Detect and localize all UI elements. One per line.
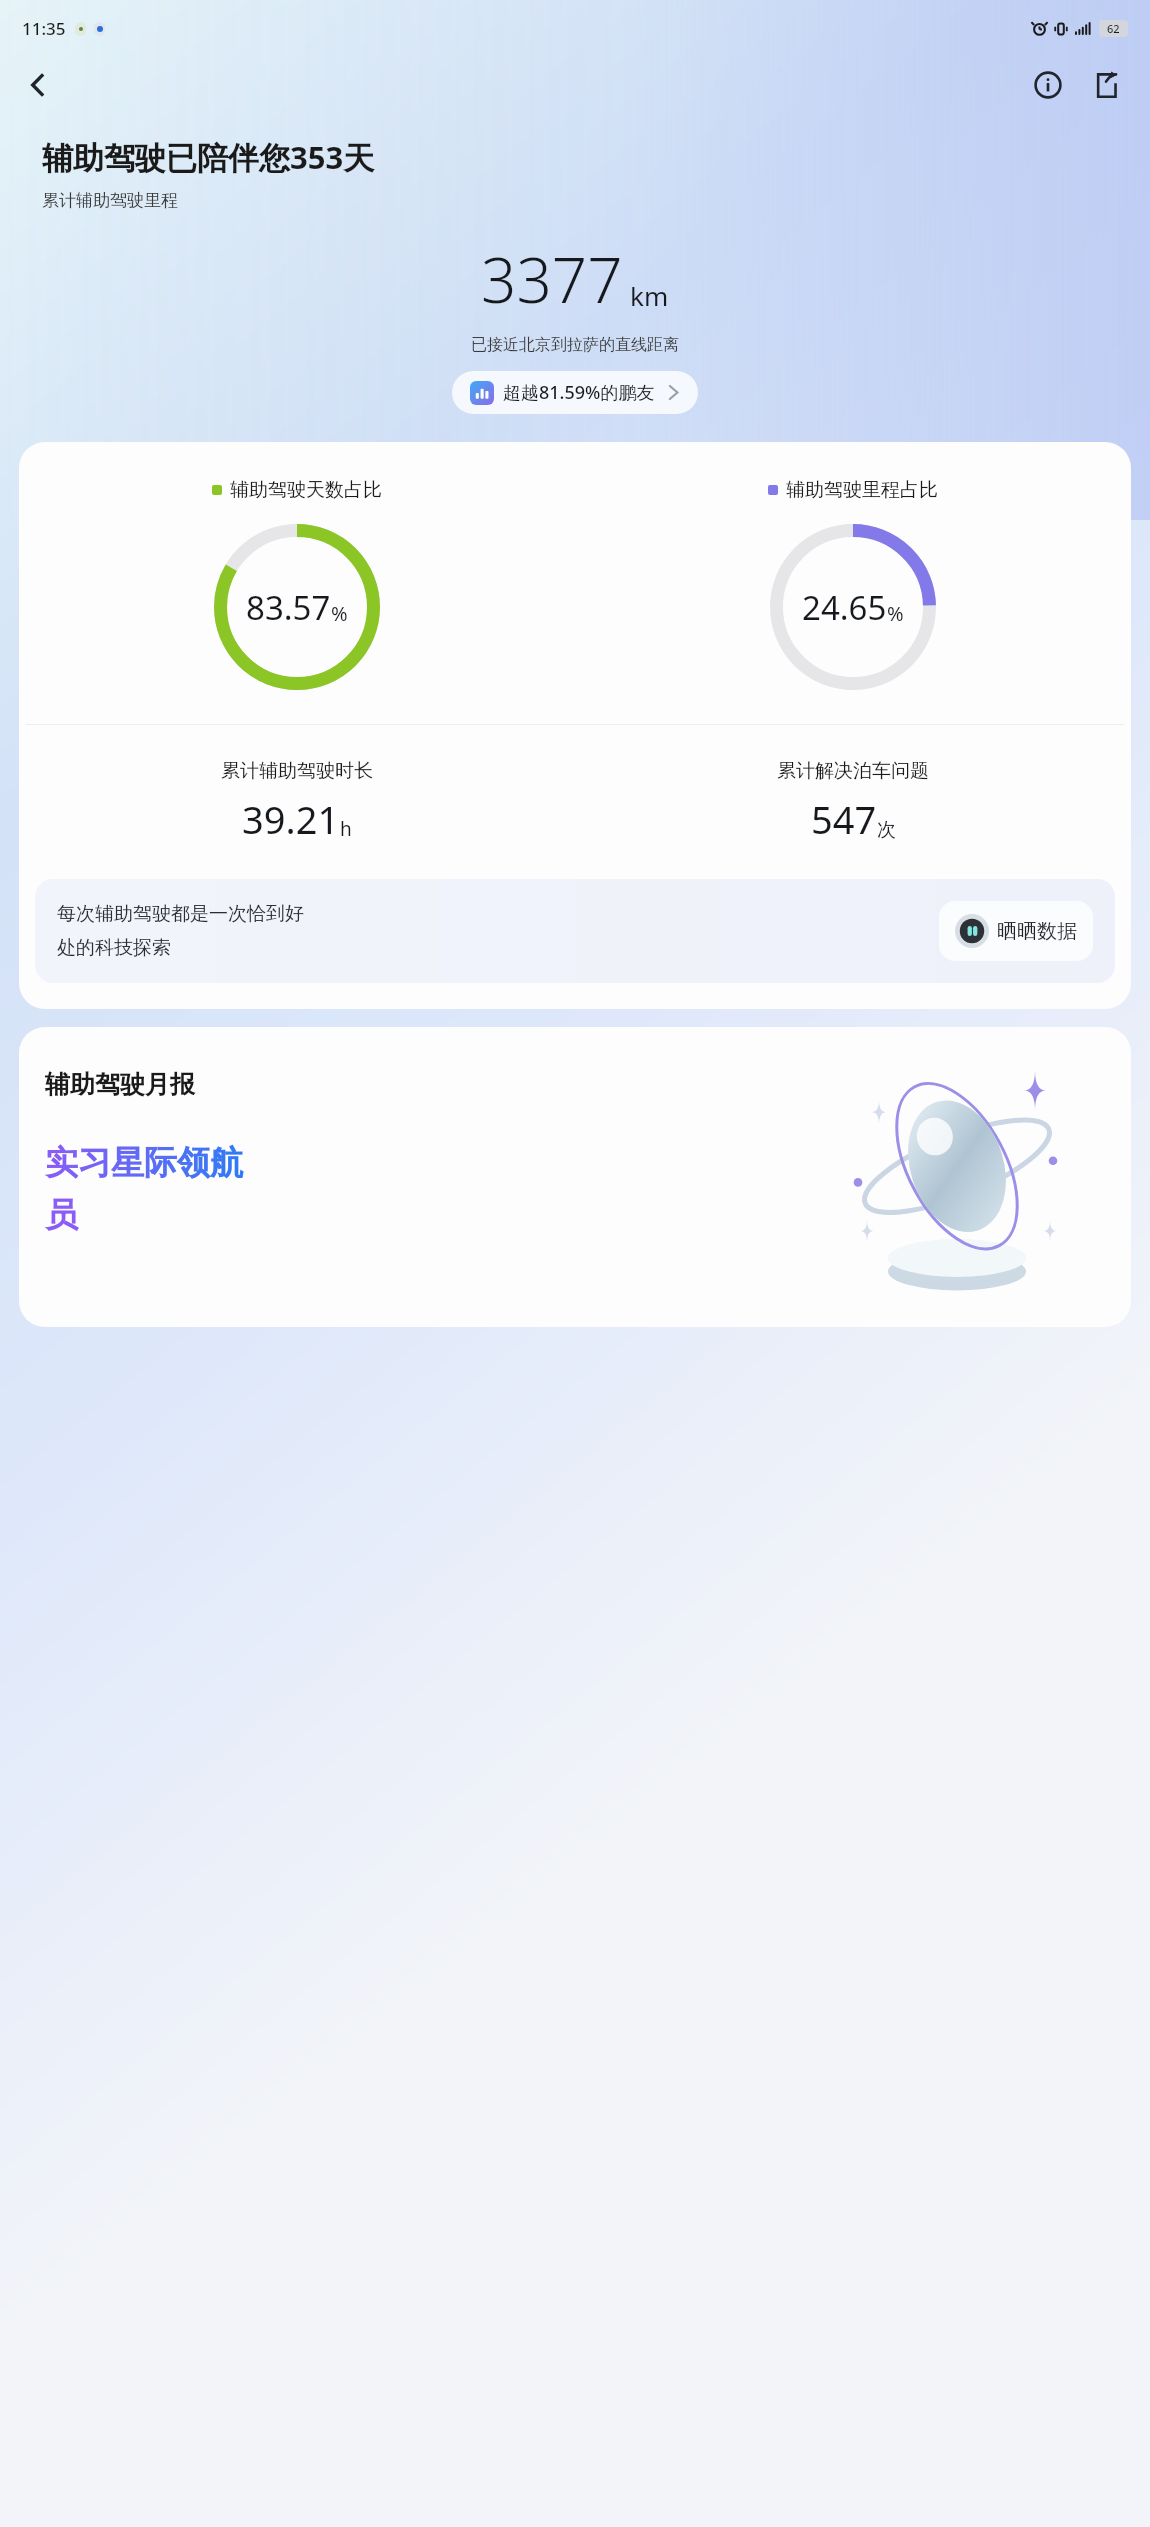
staticText: 超越81.59%的鹏友 — [503, 380, 655, 405]
button[interactable]: 辅助驾驶月报 — [19, 1027, 1131, 1327]
staticText: 累计辅助驾驶时长 — [221, 759, 373, 783]
staticText: 辅助驾驶月报 — [45, 1069, 195, 1100]
button[interactable]: Back — [14, 61, 62, 109]
staticText: 次 — [877, 818, 896, 842]
staticText: 11:35 — [22, 17, 66, 40]
staticText: 547 — [811, 793, 877, 845]
staticText: % — [331, 600, 348, 627]
staticText: 62 — [1107, 21, 1120, 36]
button[interactable]: Share — [1082, 61, 1130, 109]
staticText: 辅助驾驶天数占比 — [230, 478, 382, 502]
staticText: 24.65 — [802, 585, 887, 630]
staticText: 晒晒数据 — [997, 919, 1077, 944]
staticText: 39.21 — [242, 793, 340, 845]
staticText: 处的科技探索 — [57, 936, 171, 960]
staticText: 辅助驾驶里程占比 — [786, 478, 938, 502]
staticText: 累计解决泊车问题 — [777, 759, 929, 783]
staticText: 累计辅助驾驶里程 — [42, 190, 178, 211]
button[interactable]: 晒晒数据 — [939, 901, 1093, 961]
staticText: 3377 — [481, 237, 623, 321]
staticText: % — [887, 600, 904, 627]
staticText: km — [630, 278, 669, 313]
staticText: 员 — [45, 1194, 78, 1236]
staticText: 实习星际领航 — [45, 1142, 243, 1184]
staticText: 每次辅助驾驶都是一次恰到好 — [57, 902, 304, 926]
staticText: h — [340, 816, 352, 842]
staticText: 辅助驾驶已陪伴您353天 — [42, 136, 375, 178]
button[interactable]: 超越81.59%的鹏友 — [452, 371, 698, 414]
button[interactable]: Info — [1024, 61, 1072, 109]
staticText: 83.57 — [246, 585, 331, 630]
staticText: 已接近北京到拉萨的直线距离 — [0, 335, 1150, 355]
